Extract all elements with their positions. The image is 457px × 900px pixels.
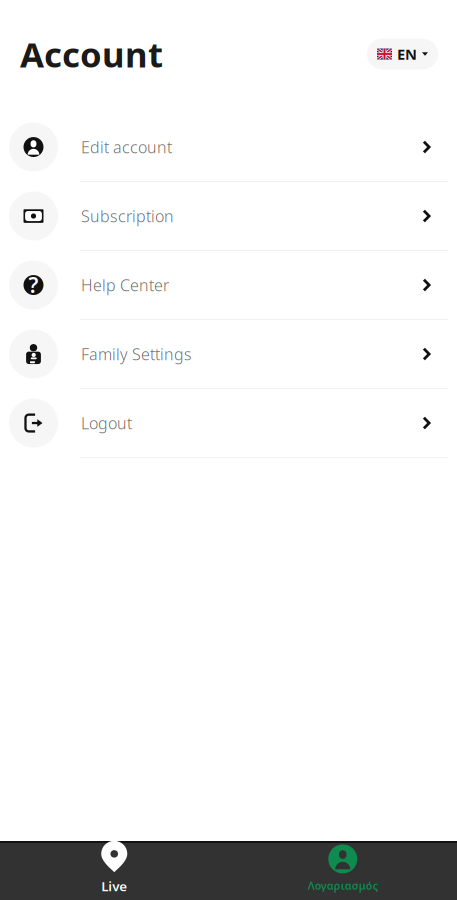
staticText: Λογαριασμός	[308, 878, 378, 893]
staticText: Help Center	[81, 274, 169, 296]
button[interactable]: Logout	[0, 389, 457, 458]
staticText: Edit account	[81, 136, 172, 158]
button[interactable]: ?	[0, 251, 457, 320]
button[interactable]: Live	[0, 842, 228, 895]
staticText: Family Settings	[81, 343, 192, 365]
staticText: Account	[20, 31, 163, 77]
staticText: ?	[28, 271, 38, 299]
staticText: Live	[101, 877, 127, 895]
staticText: EN	[397, 44, 417, 64]
staticText: Logout	[81, 412, 132, 434]
button[interactable]: Λογαριασμός	[228, 844, 457, 893]
staticText: Subscription	[81, 205, 174, 227]
button[interactable]: Family Settings	[0, 320, 457, 389]
button[interactable]: Language: EN	[367, 38, 438, 69]
button[interactable]: Subscription	[0, 182, 457, 251]
button[interactable]: Edit account	[0, 113, 457, 182]
